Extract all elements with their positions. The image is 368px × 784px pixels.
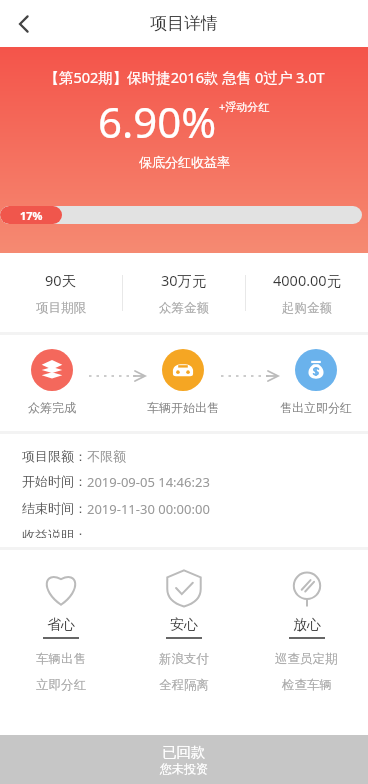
- staticText: 项目详情: [150, 13, 218, 34]
- staticText: 项目期限: [36, 300, 86, 316]
- staticText: 巡查员定期: [275, 651, 338, 667]
- button[interactable]: 90天: [0, 270, 122, 316]
- staticText: +浮动分红: [219, 99, 270, 114]
- staticText: 已回款: [162, 743, 206, 761]
- staticText: 起购金额: [282, 300, 332, 316]
- staticText: 4000.00元: [273, 270, 342, 290]
- button[interactable]: 4000.00元: [246, 270, 368, 316]
- staticText: 安心: [170, 616, 198, 634]
- staticText: 新浪支付: [159, 651, 209, 667]
- staticText: 放心: [293, 616, 321, 634]
- button[interactable]: 众筹完成: [14, 349, 89, 415]
- staticText: 售出立即分红: [280, 400, 352, 415]
- staticText: 立即分红: [36, 677, 86, 693]
- staticText: 保底分红收益率: [139, 154, 230, 170]
- button[interactable]: Back: [0, 0, 47, 47]
- staticText: 不限额: [87, 448, 126, 464]
- staticText: 车辆出售: [36, 651, 86, 667]
- staticText: 您未投资: [160, 761, 208, 776]
- staticText: 众筹金额: [159, 300, 209, 316]
- staticText: 【第502期】保时捷2016款 急售 0过户 3.0T: [44, 67, 325, 87]
- staticText: 30万元: [161, 270, 207, 290]
- button[interactable]: 已回款: [0, 735, 368, 784]
- staticText: 全程隔离: [159, 677, 209, 693]
- staticText: 众筹完成: [28, 400, 76, 415]
- staticText: 结束时间：: [22, 500, 87, 516]
- button[interactable]: 售出立即分红: [278, 349, 354, 415]
- staticText: 2019-09-05 14:46:23: [87, 473, 210, 491]
- staticText: 项目限额：: [22, 448, 87, 464]
- staticText: 车辆开始出售: [147, 400, 219, 415]
- button[interactable]: 车辆开始出售: [145, 349, 221, 415]
- staticText: 开始时间：: [22, 473, 87, 489]
- staticText: 2019-11-30 00:00:00: [87, 500, 210, 518]
- button[interactable]: 省心: [0, 566, 122, 693]
- button[interactable]: 放心: [245, 566, 368, 693]
- staticText: 6.90%: [98, 93, 217, 150]
- staticText: 90天: [45, 270, 77, 290]
- staticText: 收益说明：: [22, 527, 87, 538]
- button[interactable]: 安心: [122, 566, 245, 693]
- staticText: 省心: [47, 616, 75, 634]
- staticText: 17%: [20, 208, 43, 223]
- staticText: 检查车辆: [282, 677, 332, 693]
- button[interactable]: 30万元: [123, 270, 245, 316]
